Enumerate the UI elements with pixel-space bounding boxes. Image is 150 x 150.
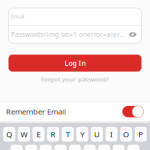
staticText: E: [36, 129, 40, 139]
staticText: O: [123, 129, 129, 139]
button[interactable]: O: [120, 127, 132, 141]
button[interactable]: H: [84, 145, 96, 150]
button[interactable]: Log In: [8, 55, 141, 72]
button[interactable]: E: [32, 127, 44, 141]
button[interactable]: P: [135, 127, 147, 141]
staticText: I: [110, 129, 113, 139]
button[interactable]: D: [40, 145, 52, 150]
button[interactable]: G: [69, 145, 81, 150]
button[interactable]: S: [25, 145, 37, 150]
button[interactable]: A: [11, 145, 23, 150]
button[interactable]: Y: [76, 127, 88, 141]
staticText: U: [94, 129, 100, 139]
button[interactable]: Forgot your password?: [0, 74, 150, 83]
button[interactable]: Show password: [128, 31, 137, 38]
button[interactable]: K: [113, 145, 125, 150]
staticText: W: [20, 129, 27, 139]
staticText: T: [66, 129, 70, 139]
staticText: Q: [6, 129, 12, 139]
button[interactable]: L: [127, 145, 139, 150]
staticText: Forgot your password?: [41, 75, 109, 83]
button[interactable]: I: [105, 127, 117, 141]
button[interactable]: Q: [3, 127, 15, 141]
staticText: P: [138, 129, 143, 139]
staticText: Log In: [64, 58, 85, 68]
button[interactable]: W: [18, 127, 30, 141]
button[interactable]: R: [47, 127, 59, 141]
button[interactable]: Remember Email: [0, 102, 150, 121]
staticText: Email: [11, 13, 24, 20]
staticText: R: [51, 129, 56, 139]
staticText: Y: [80, 129, 84, 139]
staticText: Passwords<img src=1 onerror=alert…: [11, 30, 126, 39]
staticText: Remember Email: [6, 106, 66, 117]
button[interactable]: U: [91, 127, 103, 141]
button[interactable]: J: [98, 145, 110, 150]
button[interactable]: T: [62, 127, 74, 141]
button[interactable]: F: [54, 145, 66, 150]
